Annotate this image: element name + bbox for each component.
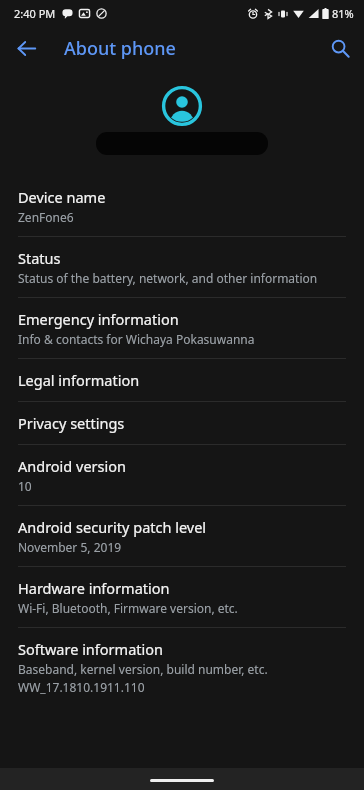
staticText: 2:40 PM xyxy=(14,6,56,21)
staticText: Hardware information xyxy=(18,578,170,598)
staticText: Android security patch level xyxy=(18,517,207,537)
button[interactable]: Software information xyxy=(0,628,364,706)
staticText: 81% xyxy=(332,6,354,21)
staticText: Wi-Fi, Bluetooth, Firmware version, etc. xyxy=(18,600,238,616)
staticText: Info & contacts for Wichaya Pokasuwanna xyxy=(18,331,255,347)
staticText: Privacy settings xyxy=(18,413,125,433)
staticText: WW_17.1810.1911.110 xyxy=(18,679,145,695)
button[interactable]: Hardware information xyxy=(0,567,364,627)
button[interactable]: Emergency information xyxy=(0,298,364,358)
staticText: Android version xyxy=(18,456,126,476)
button[interactable]: Android security patch level xyxy=(0,506,364,566)
staticText: Baseband, kernel version, build number, … xyxy=(18,661,268,677)
staticText: November 5, 2019 xyxy=(18,539,122,555)
button[interactable]: Android version xyxy=(0,445,364,505)
button[interactable]: Status xyxy=(0,237,364,297)
button[interactable]: Back xyxy=(6,28,46,68)
staticText: 10 xyxy=(18,478,32,494)
staticText: About phone xyxy=(64,36,176,61)
button[interactable]: Device name xyxy=(0,176,364,236)
staticText: Status xyxy=(18,248,61,268)
button[interactable]: Search xyxy=(320,28,360,68)
staticText: Device name xyxy=(18,187,106,207)
staticText: Emergency information xyxy=(18,309,179,329)
staticText: ZenFone6 xyxy=(18,209,74,225)
staticText: Software information xyxy=(18,639,163,659)
button[interactable]: Privacy settings xyxy=(0,402,364,444)
staticText: Legal information xyxy=(18,370,140,390)
button[interactable]: Legal information xyxy=(0,359,364,401)
staticText: Status of the battery, network, and othe… xyxy=(18,270,318,286)
